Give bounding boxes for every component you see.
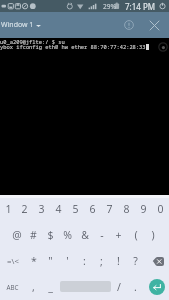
button[interactable]: +	[110, 222, 127, 248]
staticText: ybox ifconfig eth0 hw ether 88:70:77:42:…	[0, 43, 146, 50]
staticText: 3	[38, 202, 45, 216]
button[interactable]: 5	[67, 195, 84, 222]
button[interactable]: Session information	[118, 12, 140, 38]
staticText: .	[134, 280, 137, 294]
button[interactable]: (	[127, 222, 144, 248]
staticText: !	[117, 254, 120, 268]
button[interactable]: 9	[135, 195, 152, 222]
staticText: 8	[123, 202, 130, 216]
button[interactable]: 4	[50, 195, 67, 222]
staticText: (	[134, 228, 138, 242]
button[interactable]: =\<	[0, 248, 25, 274]
staticText: '	[66, 254, 69, 268]
staticText: &	[81, 228, 89, 242]
staticText: @	[12, 228, 22, 242]
button[interactable]: &	[76, 222, 93, 248]
button[interactable]: !	[110, 248, 127, 274]
staticText: /	[117, 280, 121, 294]
button[interactable]: -	[93, 222, 110, 248]
button[interactable]: Space	[59, 274, 110, 300]
staticText: ABC	[6, 283, 19, 292]
staticText: ,	[32, 280, 35, 294]
button[interactable]: ,	[25, 274, 42, 300]
button[interactable]: )	[144, 222, 161, 248]
staticText: #	[30, 228, 37, 242]
button[interactable]: /	[110, 274, 127, 300]
button[interactable]: 8	[118, 195, 135, 222]
button[interactable]: ?	[127, 248, 144, 274]
staticText: :	[83, 254, 86, 268]
button[interactable]: "	[42, 248, 59, 274]
button[interactable]: '	[59, 248, 76, 274]
staticText: -	[100, 228, 104, 242]
button[interactable]: 6	[84, 195, 101, 222]
staticText: 1	[5, 202, 12, 216]
button[interactable]: 1	[0, 195, 16, 222]
staticText: 7:14 PM	[125, 1, 156, 12]
staticText: +	[115, 228, 122, 242]
button[interactable]: 0	[152, 195, 169, 222]
staticText: 5	[72, 202, 79, 216]
button[interactable]: Backspace	[144, 248, 169, 274]
button[interactable]: ;	[93, 248, 110, 274]
button[interactable]: %	[59, 222, 76, 248]
staticText: "	[48, 254, 53, 268]
staticText: =\<	[7, 256, 19, 267]
staticText: ?	[133, 254, 138, 268]
staticText: ;	[100, 254, 103, 268]
button[interactable]: 7	[101, 195, 118, 222]
staticText: %	[63, 228, 72, 242]
staticText: 0	[157, 202, 164, 216]
button[interactable]: Close window	[143, 12, 165, 38]
staticText: $	[47, 228, 54, 242]
button[interactable]: Enter	[144, 274, 169, 300]
button[interactable]: :	[76, 248, 93, 274]
staticText: u0_a209@jflte:/ $ su	[0, 38, 65, 45]
staticText: *	[31, 254, 37, 268]
button[interactable]: _	[42, 274, 59, 300]
button[interactable]: 3	[33, 195, 50, 222]
staticText: 4	[55, 202, 62, 216]
button[interactable]: Window 1	[1, 20, 41, 30]
button[interactable]: ABC	[0, 274, 25, 300]
staticText: 2	[21, 202, 28, 216]
button[interactable]: #	[25, 222, 42, 248]
staticText: 7	[106, 202, 113, 216]
staticText: 29%	[103, 2, 116, 11]
button[interactable]: $	[42, 222, 59, 248]
staticText: 6	[89, 202, 96, 216]
button[interactable]: @	[8, 222, 25, 248]
staticText: Window 1	[1, 20, 34, 30]
button[interactable]: *	[25, 248, 42, 274]
staticText: )	[151, 228, 155, 242]
staticText: 9	[140, 202, 147, 216]
button[interactable]: 2	[16, 195, 33, 222]
button[interactable]: .	[127, 274, 144, 300]
staticText: _	[48, 280, 53, 294]
